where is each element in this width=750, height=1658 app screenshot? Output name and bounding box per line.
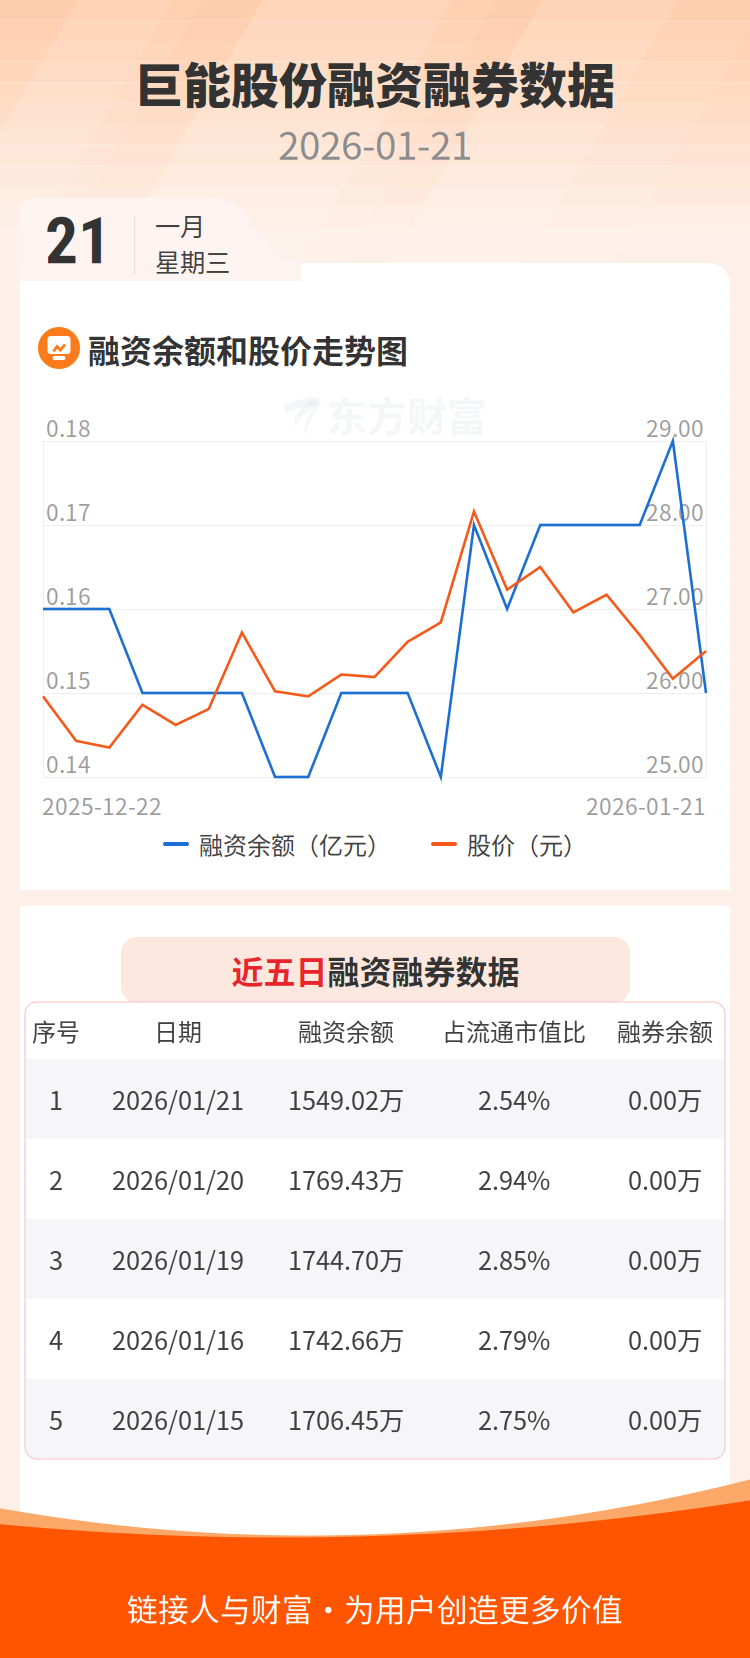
staticText: 星期三 <box>155 243 230 279</box>
staticText: 27.00 <box>646 579 704 611</box>
staticText: 融资余额和股价走势图 <box>88 326 408 372</box>
staticText: 28.00 <box>646 495 704 527</box>
staticText: 2.85% <box>478 1241 550 1277</box>
staticText: 2026/01/21 <box>112 1081 244 1117</box>
staticText: 2026-01-21 <box>586 789 706 821</box>
staticText: 2 <box>49 1161 63 1197</box>
staticText: 东方财富 <box>327 385 487 443</box>
staticText: 2026-01-21 <box>278 115 472 171</box>
staticText: 3 <box>49 1241 63 1277</box>
staticText: 26.00 <box>646 663 704 695</box>
staticText: 融资余额（亿元） <box>189 827 391 861</box>
staticText: 2026/01/19 <box>112 1241 244 1277</box>
staticText: 0.15 <box>46 663 91 695</box>
staticText: 1744.70万 <box>288 1241 404 1277</box>
staticText: 1 <box>49 1081 63 1117</box>
staticText: 融券余额 <box>617 1013 713 1048</box>
staticText: 序号 <box>32 1013 80 1048</box>
staticText: 0.00万 <box>628 1081 702 1117</box>
staticText: 东方财富 <box>332 1214 480 1267</box>
staticText: 25.00 <box>646 747 704 779</box>
staticText: 链接人与财富·为用户创造更多价值 <box>127 1586 623 1630</box>
staticText: 日期 <box>154 1013 202 1048</box>
staticText: 融资余额 <box>298 1013 394 1048</box>
staticText: 2026/01/20 <box>112 1161 244 1197</box>
staticText: 1706.45万 <box>288 1401 404 1437</box>
staticText: 0.18 <box>46 411 91 443</box>
staticText: 0.16 <box>46 579 91 611</box>
staticText: 1769.43万 <box>288 1161 404 1197</box>
staticText: 股价（元） <box>457 827 587 861</box>
staticText: 2.79% <box>478 1321 550 1357</box>
staticText: 2.54% <box>478 1081 550 1117</box>
staticText: 0.17 <box>46 495 91 527</box>
staticText: 29.00 <box>646 411 704 443</box>
staticText: 1549.02万 <box>288 1081 404 1117</box>
staticText: 占流通市值比 <box>442 1013 586 1048</box>
staticText: 2025-12-22 <box>42 789 162 821</box>
staticText: 0.00万 <box>628 1161 702 1197</box>
staticText: 0.14 <box>46 747 91 779</box>
staticText: 0.00万 <box>628 1401 702 1437</box>
staticText: 0.00万 <box>628 1241 702 1277</box>
staticText: 1742.66万 <box>288 1321 404 1357</box>
staticText: 21 <box>45 203 111 279</box>
staticText: 近五日 <box>231 947 327 993</box>
staticText: 融资融券数据 <box>327 947 519 993</box>
staticText: 巨能股份融资融券数据 <box>135 47 615 117</box>
staticText: 2026/01/15 <box>112 1401 244 1437</box>
staticText: 5 <box>49 1401 63 1437</box>
staticText: 0.00万 <box>628 1321 702 1357</box>
staticText: 2.94% <box>478 1161 550 1197</box>
staticText: 4 <box>49 1321 63 1357</box>
staticText: 2.75% <box>478 1401 550 1437</box>
staticText: 一月 <box>155 207 205 243</box>
staticText: 2026/01/16 <box>112 1321 244 1357</box>
